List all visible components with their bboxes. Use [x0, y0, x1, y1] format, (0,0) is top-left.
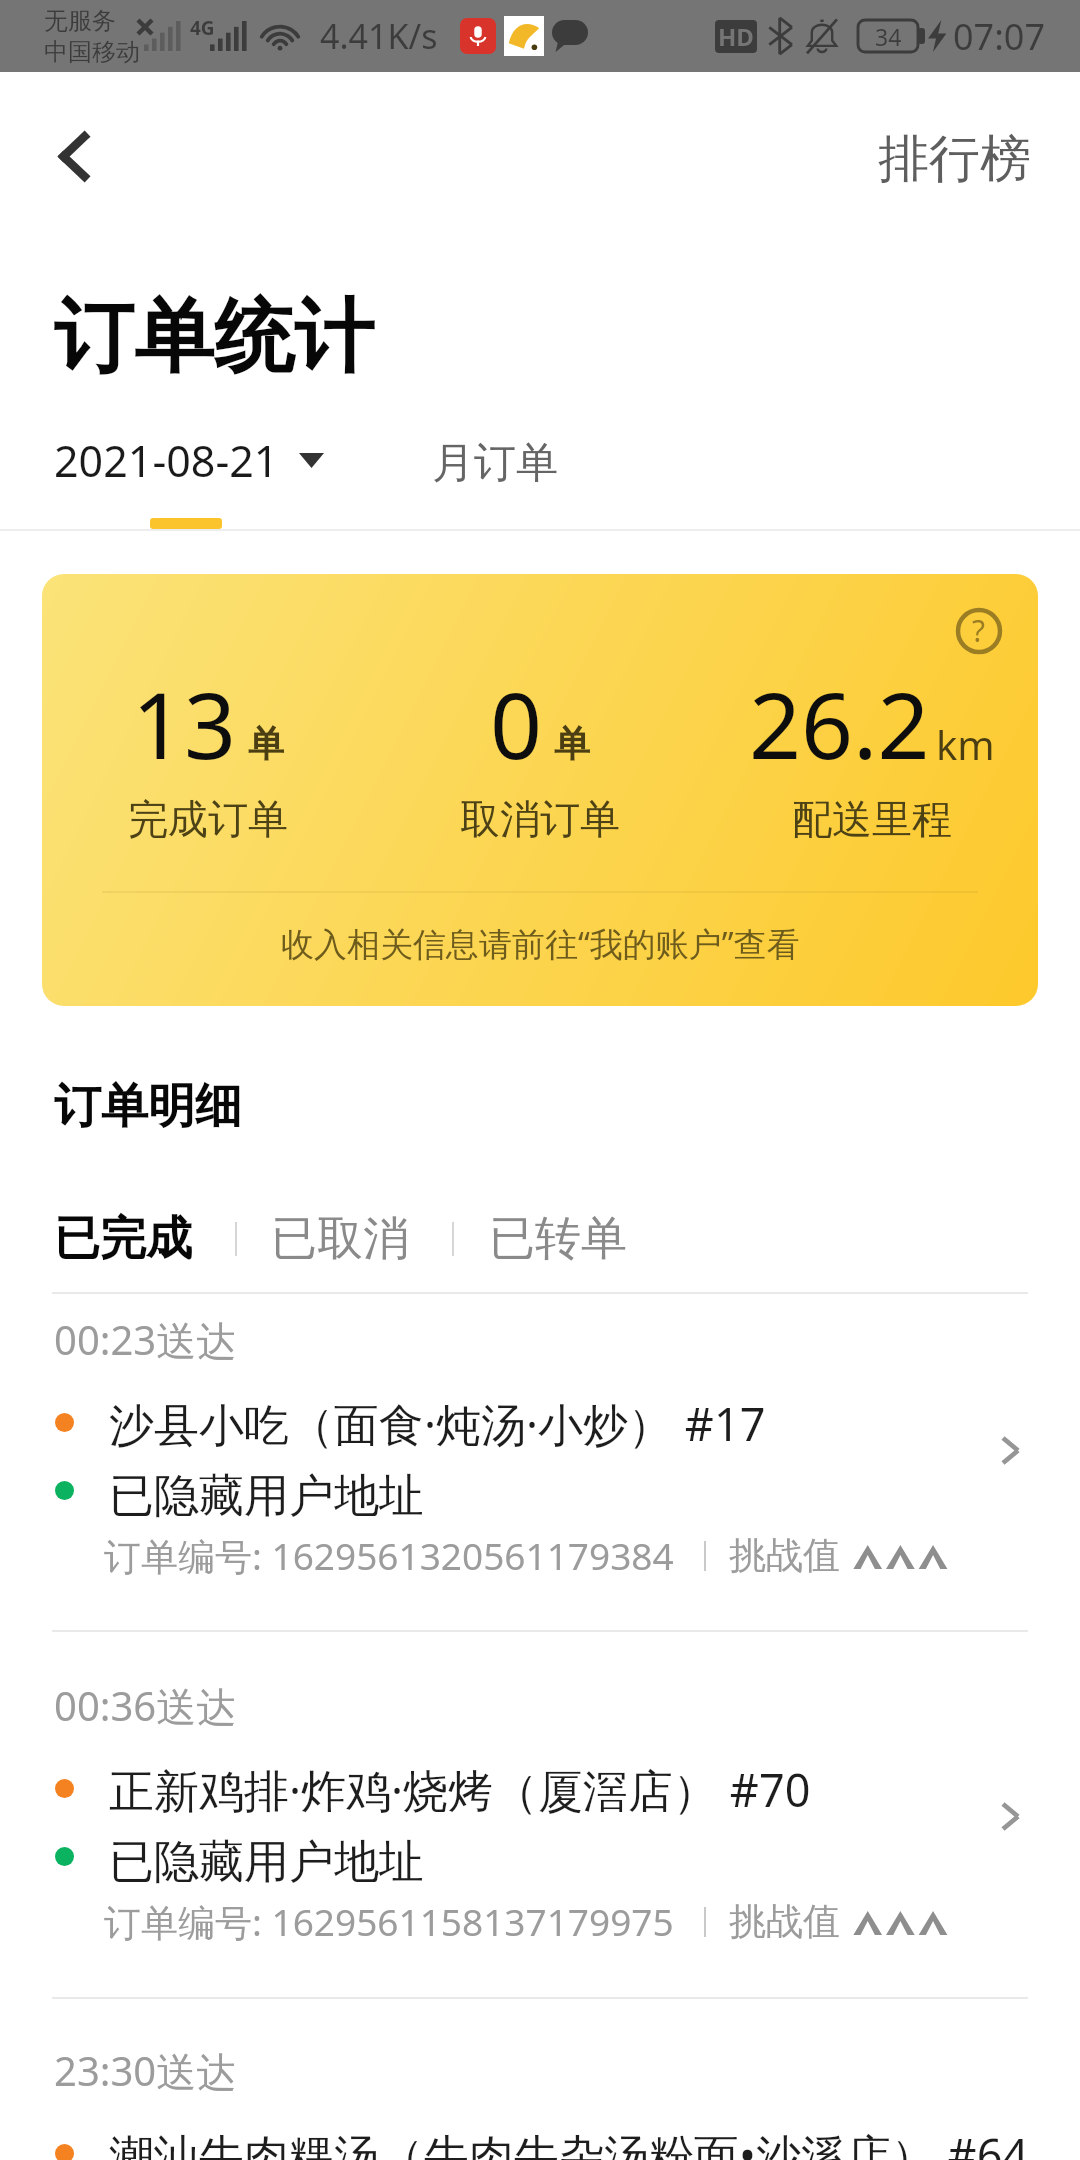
staticText: 无服务	[44, 6, 116, 36]
staticText: 4.41K/s	[320, 13, 438, 59]
staticText: 订单明细	[54, 1077, 242, 1136]
staticText: 单	[248, 721, 284, 766]
staticText: 07:07	[953, 12, 1046, 61]
staticText: 配送里程	[792, 794, 952, 844]
staticText: 已转单	[489, 1210, 627, 1268]
staticText: 34	[875, 21, 902, 52]
staticText: 23:30送达	[54, 2043, 237, 2098]
button[interactable]: 2021-08-21	[42, 419, 336, 502]
staticText: 完成订单	[128, 794, 288, 844]
staticText: ?	[972, 610, 986, 651]
staticText: 2021-08-21	[54, 431, 279, 490]
staticText: km	[936, 717, 995, 771]
button[interactable]: 已转单	[477, 1196, 639, 1282]
button[interactable]: Help	[949, 601, 1009, 661]
button[interactable]: 排行榜	[866, 115, 1043, 203]
staticText: 13	[132, 662, 237, 786]
staticText: 正新鸡排·炸鸡·烧烤（厦滘店） #70	[109, 1759, 811, 1820]
staticText: 已取消	[271, 1210, 409, 1268]
staticText: 潮汕牛肉粿汤（牛肉牛杂汤粉面•沙溪店） #64	[109, 2124, 1029, 2160]
button[interactable]: Back	[29, 111, 119, 201]
staticText: 已隐藏用户地址	[109, 1468, 424, 1525]
button[interactable]: 00:36送达	[0, 1645, 1080, 1997]
staticText: 取消订单	[460, 794, 620, 844]
staticText: 挑战值	[729, 1532, 840, 1579]
button[interactable]: 23:30送达	[0, 2010, 1080, 2160]
staticText: HD	[718, 20, 754, 53]
button[interactable]: 已完成	[42, 1196, 204, 1282]
staticText: 沙县小吃（面食·炖汤·小炒） #17	[109, 1393, 766, 1454]
staticText: 排行榜	[878, 127, 1031, 191]
staticText: 4G	[190, 15, 215, 41]
button[interactable]: 月订单	[420, 425, 570, 502]
staticText: 月订单	[432, 437, 558, 490]
staticText: 已隐藏用户地址	[109, 1834, 424, 1891]
staticText: 0	[490, 662, 543, 786]
button[interactable]: 已取消	[259, 1196, 421, 1282]
staticText: 已完成	[54, 1210, 192, 1268]
staticText: 订单编号: 1629561320561179384	[104, 1530, 674, 1581]
staticText: 收入相关信息请前往“我的账户”查看	[281, 921, 800, 966]
staticText: 订单统计	[54, 287, 374, 388]
staticText: 挑战值	[729, 1898, 840, 1945]
staticText: 单	[554, 721, 590, 766]
staticText: 中国移动	[44, 37, 140, 67]
staticText: 26.2	[749, 662, 930, 786]
button[interactable]: 00:23送达	[0, 1279, 1080, 1631]
staticText: 00:23送达	[54, 1312, 237, 1367]
staticText: 00:36送达	[54, 1678, 237, 1733]
staticText: 订单编号: 1629561158137179975	[104, 1896, 674, 1947]
